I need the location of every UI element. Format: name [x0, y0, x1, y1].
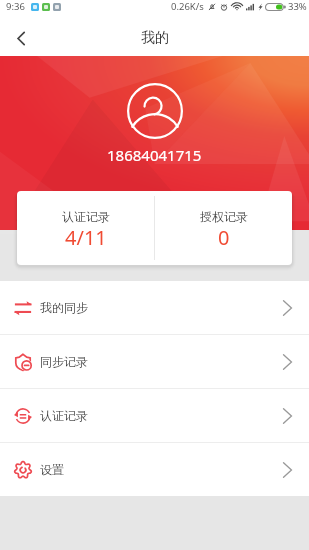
staticText: 0: [218, 224, 230, 251]
button[interactable]: Back: [4, 21, 38, 55]
button[interactable]: 认证记录: [17, 191, 154, 265]
button[interactable]: 我的同步: [0, 281, 309, 334]
staticText: 同步记录: [40, 354, 88, 369]
staticText: 我的: [141, 29, 169, 47]
staticText: 设置: [40, 462, 64, 477]
staticText: 18684041715: [107, 145, 202, 165]
staticText: 9:36: [6, 0, 25, 13]
staticText: 4/11: [65, 224, 107, 251]
staticText: 我的同步: [40, 300, 88, 315]
staticText: 0.26K/s: [171, 0, 204, 13]
button[interactable]: 认证记录: [0, 389, 309, 442]
staticText: 认证记录: [40, 408, 88, 423]
staticText: 授权记录: [200, 209, 248, 224]
staticText: 33%: [288, 0, 307, 13]
button[interactable]: 设置: [0, 443, 309, 496]
staticText: 认证记录: [62, 209, 110, 224]
button[interactable]: 同步记录: [0, 335, 309, 388]
button[interactable]: 授权记录: [155, 191, 292, 265]
